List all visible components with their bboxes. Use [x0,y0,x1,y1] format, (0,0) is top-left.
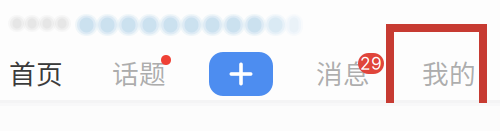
button[interactable]: 消息 [0,0,370,92]
staticText: 我的 [422,53,476,92]
staticText: 话题 [112,53,166,92]
button[interactable]: 我的 [0,0,476,92]
button[interactable]: 发布 [0,0,273,96]
staticText: 首页 [9,53,63,92]
button[interactable]: 话题 [0,0,166,92]
staticText: 消息 [316,53,370,92]
button[interactable]: 首页 [0,0,63,92]
staticText: 29 [360,53,382,74]
